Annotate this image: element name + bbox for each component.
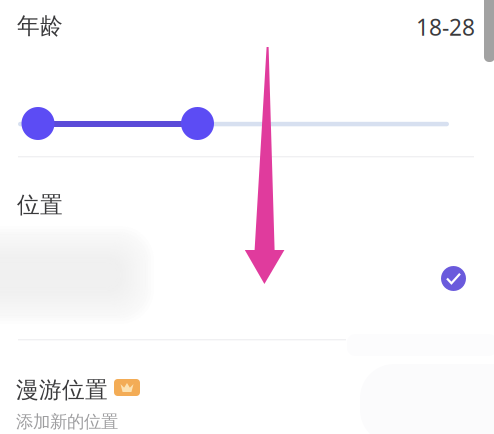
staticText: 18-28 xyxy=(416,12,475,42)
staticText: 漫游位置 xyxy=(16,376,108,404)
button[interactable]: Selected location xyxy=(441,266,466,291)
button[interactable]: 漫游位置 xyxy=(16,376,336,432)
staticText: 添加新的位置 xyxy=(16,411,118,432)
staticText: 位置 xyxy=(17,191,63,219)
button[interactable]: Maximum age xyxy=(181,107,214,140)
button[interactable]: 18-28 xyxy=(416,12,475,42)
staticText: 年龄 xyxy=(17,12,63,40)
button[interactable]: Minimum age xyxy=(21,107,54,140)
